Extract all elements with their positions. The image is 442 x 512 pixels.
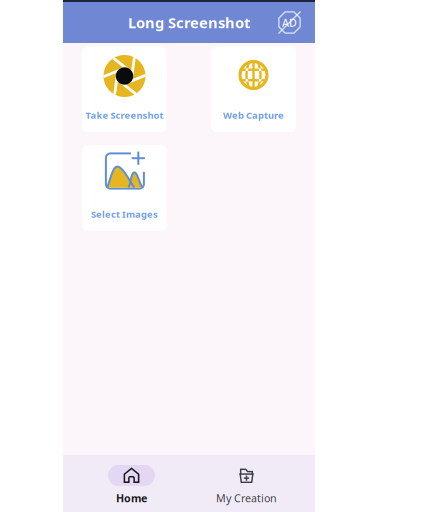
staticText: Web Capture (223, 109, 284, 121)
button[interactable]: Home (74, 465, 189, 505)
button[interactable]: Remove ads (278, 11, 315, 34)
button[interactable]: Select Images (82, 145, 167, 231)
staticText: Long Screenshot (128, 13, 250, 32)
staticText: Take Screenshot (85, 109, 163, 121)
staticText: Home (116, 491, 147, 505)
button[interactable]: My Creation (189, 465, 304, 505)
staticText: AD (282, 15, 297, 30)
button[interactable]: Take Screenshot (82, 46, 167, 132)
button[interactable]: Web Capture (211, 46, 296, 132)
staticText: My Creation (216, 491, 277, 505)
staticText: Select Images (91, 208, 158, 220)
